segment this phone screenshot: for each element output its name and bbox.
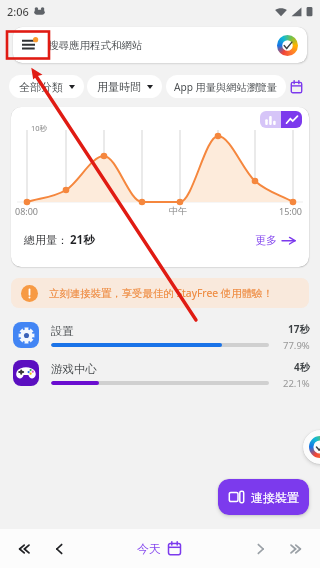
button[interactable]: Calendar (290, 80, 303, 94)
button[interactable]: 設置 (0, 316, 320, 354)
button[interactable]: Previous (41, 531, 77, 567)
button[interactable]: Bar chart (260, 111, 281, 128)
other: Profile (277, 35, 298, 56)
other: Menu (22, 38, 38, 52)
staticText: 連接裝置 (251, 490, 299, 505)
staticText: 設置 (51, 324, 74, 338)
staticText: 今天 (137, 541, 161, 556)
staticText: 17秒 (288, 322, 310, 336)
button[interactable]: StayFree (303, 430, 320, 464)
button[interactable]: Line chart (281, 111, 302, 128)
staticText: 游戏中心 (51, 362, 97, 376)
button[interactable]: 全部分類 (9, 75, 84, 98)
button[interactable]: App 用量與網站瀏覽量 (166, 75, 286, 98)
staticText: 中午 (169, 205, 187, 216)
staticText: 21秒 (70, 232, 95, 248)
staticText: 全部分類 (19, 80, 63, 94)
staticText: 15:00 (279, 205, 303, 217)
button[interactable]: 更多 (252, 230, 298, 250)
staticText: 總用量： (24, 233, 68, 247)
button[interactable]: First (5, 531, 41, 567)
button[interactable]: 游戏中心 (0, 354, 320, 392)
staticText: 用量時間 (97, 80, 141, 94)
staticText: 更多 (255, 233, 277, 247)
staticText: 10秒 (31, 123, 48, 133)
button[interactable]: Last (279, 531, 315, 567)
staticText: 08:00 (15, 205, 39, 217)
staticText: 2:06 (7, 4, 29, 19)
button[interactable]: 今天 (129, 535, 190, 562)
staticText: App 用量與網站瀏覽量 (174, 80, 278, 94)
staticText: 22.1% (283, 377, 310, 390)
button[interactable]: 用量時間 (87, 75, 162, 98)
button[interactable]: Menu (13, 27, 307, 63)
staticText: 立刻連接裝置，享受最佳的 StayFree 使用體驗！ (49, 286, 273, 300)
button[interactable]: Next (243, 531, 279, 567)
staticText: 搜尋應用程式和網站 (48, 39, 143, 52)
button[interactable]: 立刻連接裝置，享受最佳的 StayFree 使用體驗！ (11, 278, 309, 308)
staticText: 77.9% (283, 339, 310, 352)
staticText: 4秒 (294, 360, 310, 374)
button[interactable]: 連接裝置 (218, 479, 309, 515)
